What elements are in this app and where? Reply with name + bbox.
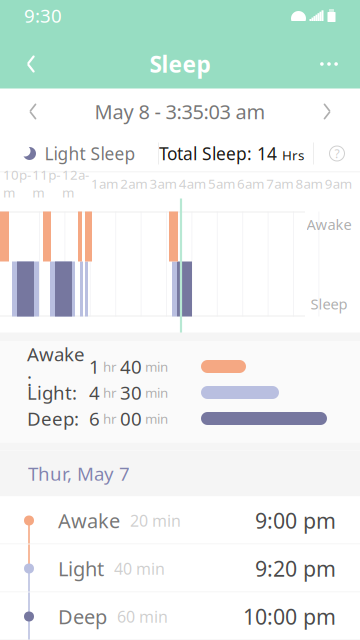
staticText: min	[142, 384, 168, 401]
staticText: 9:30	[24, 3, 62, 28]
staticText: hr	[100, 358, 120, 375]
staticText: Awake	[58, 507, 120, 534]
button[interactable]: Awake	[0, 496, 360, 544]
staticText: 40 min	[114, 558, 165, 579]
staticText: 10pm	[3, 166, 31, 201]
staticText: 4	[89, 380, 100, 405]
staticText: 20 min	[130, 510, 181, 531]
staticText: hr	[100, 410, 120, 427]
staticText: 10:00 pm	[243, 602, 336, 631]
button[interactable]: Back	[9, 42, 53, 86]
staticText: 9:00 pm	[255, 506, 336, 535]
button[interactable]: Help	[314, 134, 360, 172]
staticText: Deep:	[27, 406, 79, 431]
staticText: 1am	[91, 175, 118, 192]
staticText: min	[142, 410, 168, 427]
staticText: Deep	[58, 603, 107, 630]
staticText: Light Sleep	[44, 142, 135, 165]
staticText: 00	[120, 406, 142, 431]
staticText: 9:20 pm	[255, 554, 336, 583]
staticText: May 8 - 3:35:03 am	[94, 98, 265, 125]
button[interactable]: Light	[0, 544, 360, 592]
staticText: 8am	[295, 175, 322, 192]
staticText: Awake:	[27, 342, 85, 391]
staticText: 5am	[208, 175, 235, 192]
staticText: 2am	[120, 175, 147, 192]
staticText: hr	[100, 384, 120, 401]
staticText: min	[142, 358, 168, 375]
staticText: Awake	[306, 214, 351, 234]
staticText: 4am	[179, 175, 206, 192]
button[interactable]: Previous day	[11, 89, 55, 133]
staticText: 3am	[149, 175, 176, 192]
staticText: 11pm	[32, 166, 60, 201]
staticText: 30	[120, 380, 142, 405]
staticText: Light:	[27, 380, 77, 405]
staticText: 60 min	[117, 606, 168, 627]
button[interactable]: Deep	[0, 592, 360, 640]
staticText: 7am	[266, 175, 293, 192]
staticText: Sleep	[310, 294, 347, 313]
button[interactable]: More options	[307, 42, 351, 86]
staticText: 1	[89, 354, 100, 379]
staticText: Sleep	[149, 49, 210, 79]
staticText: Total Sleep: 14 Hrs	[159, 142, 304, 165]
staticText: Thur, May 7	[28, 461, 130, 486]
staticText: 9am	[325, 175, 352, 192]
staticText: 40	[120, 354, 142, 379]
staticText: 6	[89, 406, 100, 431]
button[interactable]: Next day	[305, 89, 349, 133]
staticText: ?	[334, 145, 339, 161]
staticText: Light	[58, 555, 104, 582]
staticText: 12am	[62, 166, 89, 201]
staticText: 6am	[237, 175, 264, 192]
